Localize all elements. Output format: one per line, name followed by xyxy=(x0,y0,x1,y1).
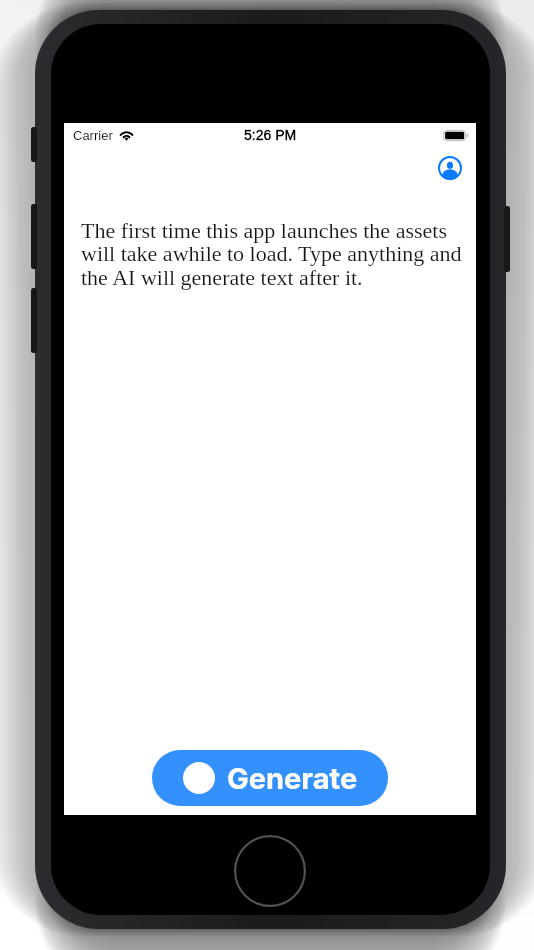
staticText: The first time this app launches the ass… xyxy=(81,218,466,289)
staticText: Carrier xyxy=(73,128,113,143)
staticText: Generate xyxy=(227,761,358,796)
button[interactable]: Generate xyxy=(152,750,388,806)
button[interactable]: Account xyxy=(434,152,466,184)
staticText: 5:26 PM xyxy=(244,127,297,143)
